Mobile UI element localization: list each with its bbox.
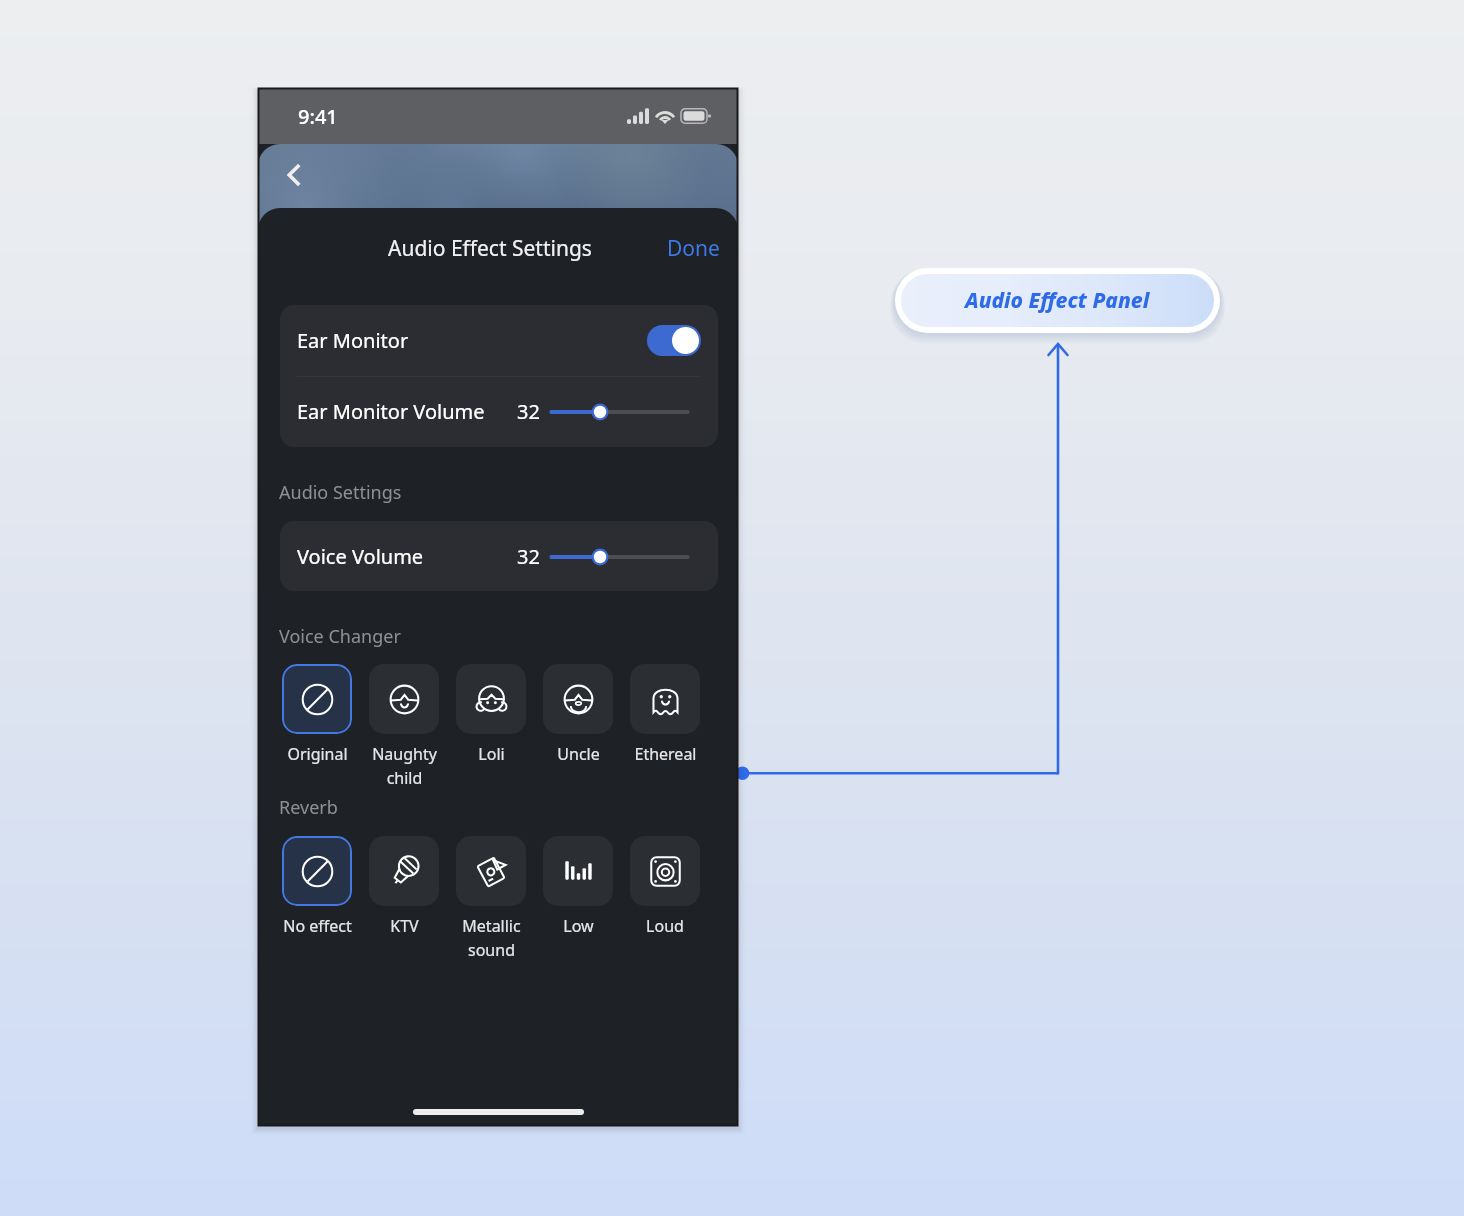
staticText: Metallic sound: [462, 915, 521, 961]
staticText: 9:41: [298, 103, 338, 130]
staticText: Ear Monitor Volume: [297, 398, 485, 425]
staticText: Uncle: [557, 743, 600, 765]
staticText: Loli: [478, 743, 505, 765]
button[interactable]: Naughty child: [369, 664, 439, 789]
staticText: Done: [667, 234, 720, 263]
staticText: Reverb: [279, 795, 338, 820]
button[interactable]: Loli: [456, 664, 526, 765]
button[interactable]: Back: [272, 153, 316, 197]
staticText: Voice Volume: [297, 543, 424, 570]
button[interactable]: Done: [657, 228, 730, 269]
button[interactable]: Original: [282, 664, 352, 765]
button[interactable]: Ear Monitor: [280, 305, 718, 376]
button[interactable]: Metallic sound: [456, 836, 526, 961]
staticText: Audio Effect Panel: [965, 286, 1150, 315]
staticText: Loud: [646, 915, 684, 937]
staticText: Naughty child: [372, 743, 437, 789]
staticText: Original: [287, 743, 348, 765]
button[interactable]: Loud: [630, 836, 700, 937]
staticText: No effect: [283, 915, 352, 937]
staticText: 32: [517, 543, 540, 570]
button[interactable]: No effect: [282, 836, 352, 937]
button[interactable]: Ethereal: [630, 664, 700, 765]
button[interactable]: Ear Monitor toggle: [647, 325, 701, 356]
button[interactable]: Audio Effect Panel: [901, 274, 1214, 327]
staticText: Ethereal: [634, 743, 697, 765]
staticText: Ear Monitor: [297, 327, 409, 354]
button[interactable]: Low: [543, 836, 613, 937]
staticText: Low: [563, 915, 594, 937]
staticText: Audio Effect Settings: [388, 234, 592, 263]
staticText: KTV: [390, 915, 419, 937]
staticText: Audio Settings: [279, 480, 402, 505]
staticText: Voice Changer: [279, 624, 401, 649]
button[interactable]: KTV: [369, 836, 439, 937]
staticText: 32: [517, 398, 540, 425]
button[interactable]: Uncle: [543, 664, 613, 765]
